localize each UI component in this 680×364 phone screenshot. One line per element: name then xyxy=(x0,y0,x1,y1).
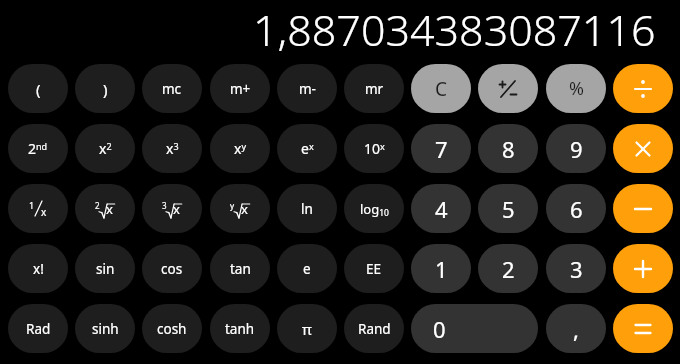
button[interactable]: root 2 of x xyxy=(75,184,135,233)
button[interactable]: Plus minus xyxy=(478,64,538,113)
staticText: 9 xyxy=(570,134,583,164)
staticText: 0 xyxy=(433,314,446,344)
button[interactable]: 4 xyxy=(411,184,471,233)
staticText: 7 xyxy=(435,134,448,164)
staticText: x2 xyxy=(99,139,112,158)
button[interactable]: root 3 of x xyxy=(142,184,202,233)
button[interactable]: 2 xyxy=(478,244,538,293)
staticText: ex xyxy=(301,139,314,158)
staticText: mr xyxy=(365,80,384,98)
button[interactable]: m- xyxy=(277,64,337,113)
staticText: e xyxy=(303,260,311,278)
button[interactable]: 0 xyxy=(411,304,538,353)
button[interactable]: sinh xyxy=(75,304,135,353)
button[interactable]: ln xyxy=(277,184,337,233)
button[interactable]: mc xyxy=(142,64,202,113)
button[interactable]: Divide xyxy=(613,64,673,113)
button[interactable]: tanh xyxy=(210,304,270,353)
button[interactable]: one over x xyxy=(8,184,68,233)
button[interactable]: sin xyxy=(75,244,135,293)
staticText: cosh xyxy=(157,320,187,338)
staticText: 2 xyxy=(95,200,100,211)
button[interactable]: root y of x xyxy=(210,184,270,233)
staticText: 2 xyxy=(502,254,515,284)
staticText: sin xyxy=(96,260,115,278)
staticText: y xyxy=(230,200,235,211)
staticText: 2nd xyxy=(28,139,48,158)
staticText: x xyxy=(241,200,248,218)
staticText: sinh xyxy=(92,320,119,338)
staticText: 6 xyxy=(570,194,583,224)
button[interactable]: Multiply xyxy=(613,124,673,173)
staticText: x3 xyxy=(166,139,179,158)
button[interactable]: 9 xyxy=(546,124,606,173)
button[interactable]: log10 xyxy=(344,184,404,233)
staticText: 3 xyxy=(570,254,583,284)
staticText: 1,887034383087116 xyxy=(253,0,656,58)
staticText: 4 xyxy=(435,194,448,224)
staticText: 10x xyxy=(364,139,385,158)
staticText: 8 xyxy=(502,134,515,164)
button[interactable]: cos xyxy=(142,244,202,293)
staticText: π xyxy=(302,319,312,339)
staticText: m+ xyxy=(230,80,251,98)
button[interactable]: x2 xyxy=(75,124,135,173)
staticText: Rand xyxy=(358,320,391,338)
staticText: 1 xyxy=(29,199,35,211)
button[interactable]: e xyxy=(277,244,337,293)
staticText: ( xyxy=(36,79,41,99)
staticText: tanh xyxy=(225,320,255,338)
staticText: % xyxy=(569,76,584,101)
button[interactable]: 1 xyxy=(411,244,471,293)
staticText: log10 xyxy=(360,200,389,218)
button[interactable]: 8 xyxy=(478,124,538,173)
button[interactable]: tan xyxy=(210,244,270,293)
button[interactable]: Plus xyxy=(613,244,673,293)
button[interactable]: 7 xyxy=(411,124,471,173)
button[interactable]: π xyxy=(277,304,337,353)
staticText: 3 xyxy=(162,200,167,211)
button[interactable]: 3 xyxy=(546,244,606,293)
button[interactable]: m+ xyxy=(210,64,270,113)
staticText: cos xyxy=(161,260,183,278)
staticText: x xyxy=(41,205,47,219)
staticText: EE xyxy=(366,260,382,278)
button[interactable]: ( xyxy=(8,64,68,113)
staticText: x! xyxy=(33,260,44,278)
staticText: mc xyxy=(162,80,182,98)
staticText: m- xyxy=(299,80,316,98)
button[interactable]: EE xyxy=(344,244,404,293)
staticText: tan xyxy=(230,260,251,278)
button[interactable]: % xyxy=(546,64,606,113)
staticText: x xyxy=(106,200,113,218)
button[interactable]: cosh xyxy=(142,304,202,353)
staticText: Rad xyxy=(26,320,51,338)
button[interactable]: , xyxy=(546,304,606,353)
button[interactable]: Equals xyxy=(613,304,673,353)
button[interactable]: x! xyxy=(8,244,68,293)
button[interactable]: 2nd xyxy=(8,124,68,173)
button[interactable]: 5 xyxy=(478,184,538,233)
button[interactable]: C xyxy=(411,64,471,113)
button[interactable]: xy xyxy=(210,124,270,173)
staticText: ) xyxy=(103,79,108,99)
button[interactable]: ex xyxy=(277,124,337,173)
button[interactable]: x3 xyxy=(142,124,202,173)
button[interactable]: Rad xyxy=(8,304,68,353)
staticText: , xyxy=(573,314,579,344)
button[interactable]: Minus xyxy=(613,184,673,233)
staticText: xy xyxy=(234,139,246,158)
staticText: ln xyxy=(301,200,313,218)
button[interactable]: mr xyxy=(344,64,404,113)
staticText: C xyxy=(435,76,448,102)
button[interactable]: ) xyxy=(75,64,135,113)
staticText: x xyxy=(173,200,180,218)
button[interactable]: Rand xyxy=(344,304,404,353)
button[interactable]: 6 xyxy=(546,184,606,233)
staticText: 5 xyxy=(502,194,515,224)
staticText: 1 xyxy=(435,254,448,284)
button[interactable]: 10x xyxy=(344,124,404,173)
